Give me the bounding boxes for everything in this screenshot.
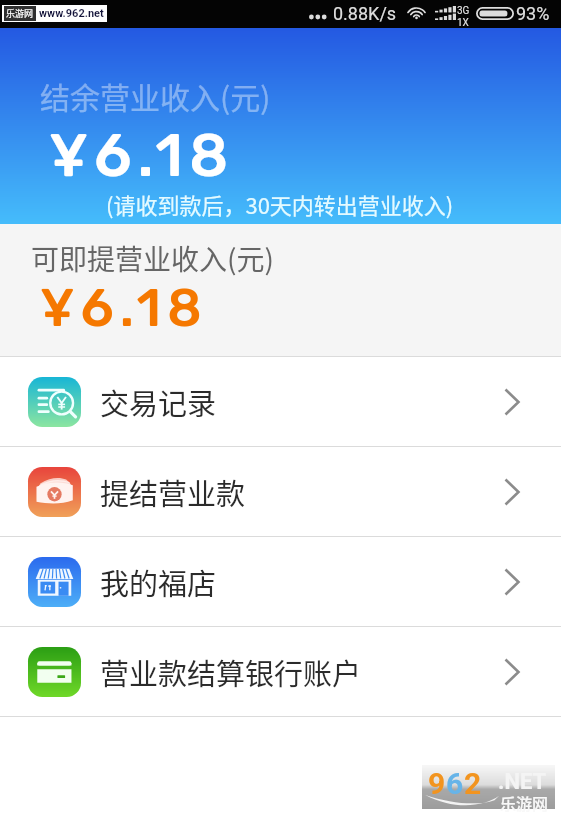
staticText: ¥6.18 xyxy=(49,120,235,191)
staticText: 9 xyxy=(428,766,446,801)
staticText: (请收到款后，30天内转出营业收入) xyxy=(106,188,454,220)
staticText: 乐游网 xyxy=(6,7,34,20)
staticText: 0.88K/s xyxy=(333,3,397,24)
staticText: 93% xyxy=(516,3,550,24)
staticText: 交易记录 xyxy=(100,381,217,423)
staticText: 可即提营业收入(元) xyxy=(31,238,274,279)
button[interactable]: 我的福店 xyxy=(0,537,561,626)
staticText: 我的福店 xyxy=(100,561,217,603)
button[interactable]: 营业款结算银行账户 xyxy=(0,627,561,716)
staticText: 营业款结算银行账户 xyxy=(100,651,362,693)
button[interactable]: 交易记录 xyxy=(0,357,561,446)
staticText: 乐游网 xyxy=(500,791,549,814)
staticText: 提结营业款 xyxy=(100,471,246,513)
staticText: www.962.net xyxy=(39,7,104,20)
staticText: ¥6.18 xyxy=(40,276,208,339)
staticText: 1X xyxy=(457,17,469,29)
button[interactable]: 提结营业款 xyxy=(0,447,561,536)
staticText: 2 xyxy=(464,766,482,801)
staticText: 结余营业收入(元) xyxy=(40,74,271,117)
staticText: .NET xyxy=(498,769,547,795)
staticText: 3G xyxy=(457,5,470,17)
staticText: 6 xyxy=(446,766,464,801)
